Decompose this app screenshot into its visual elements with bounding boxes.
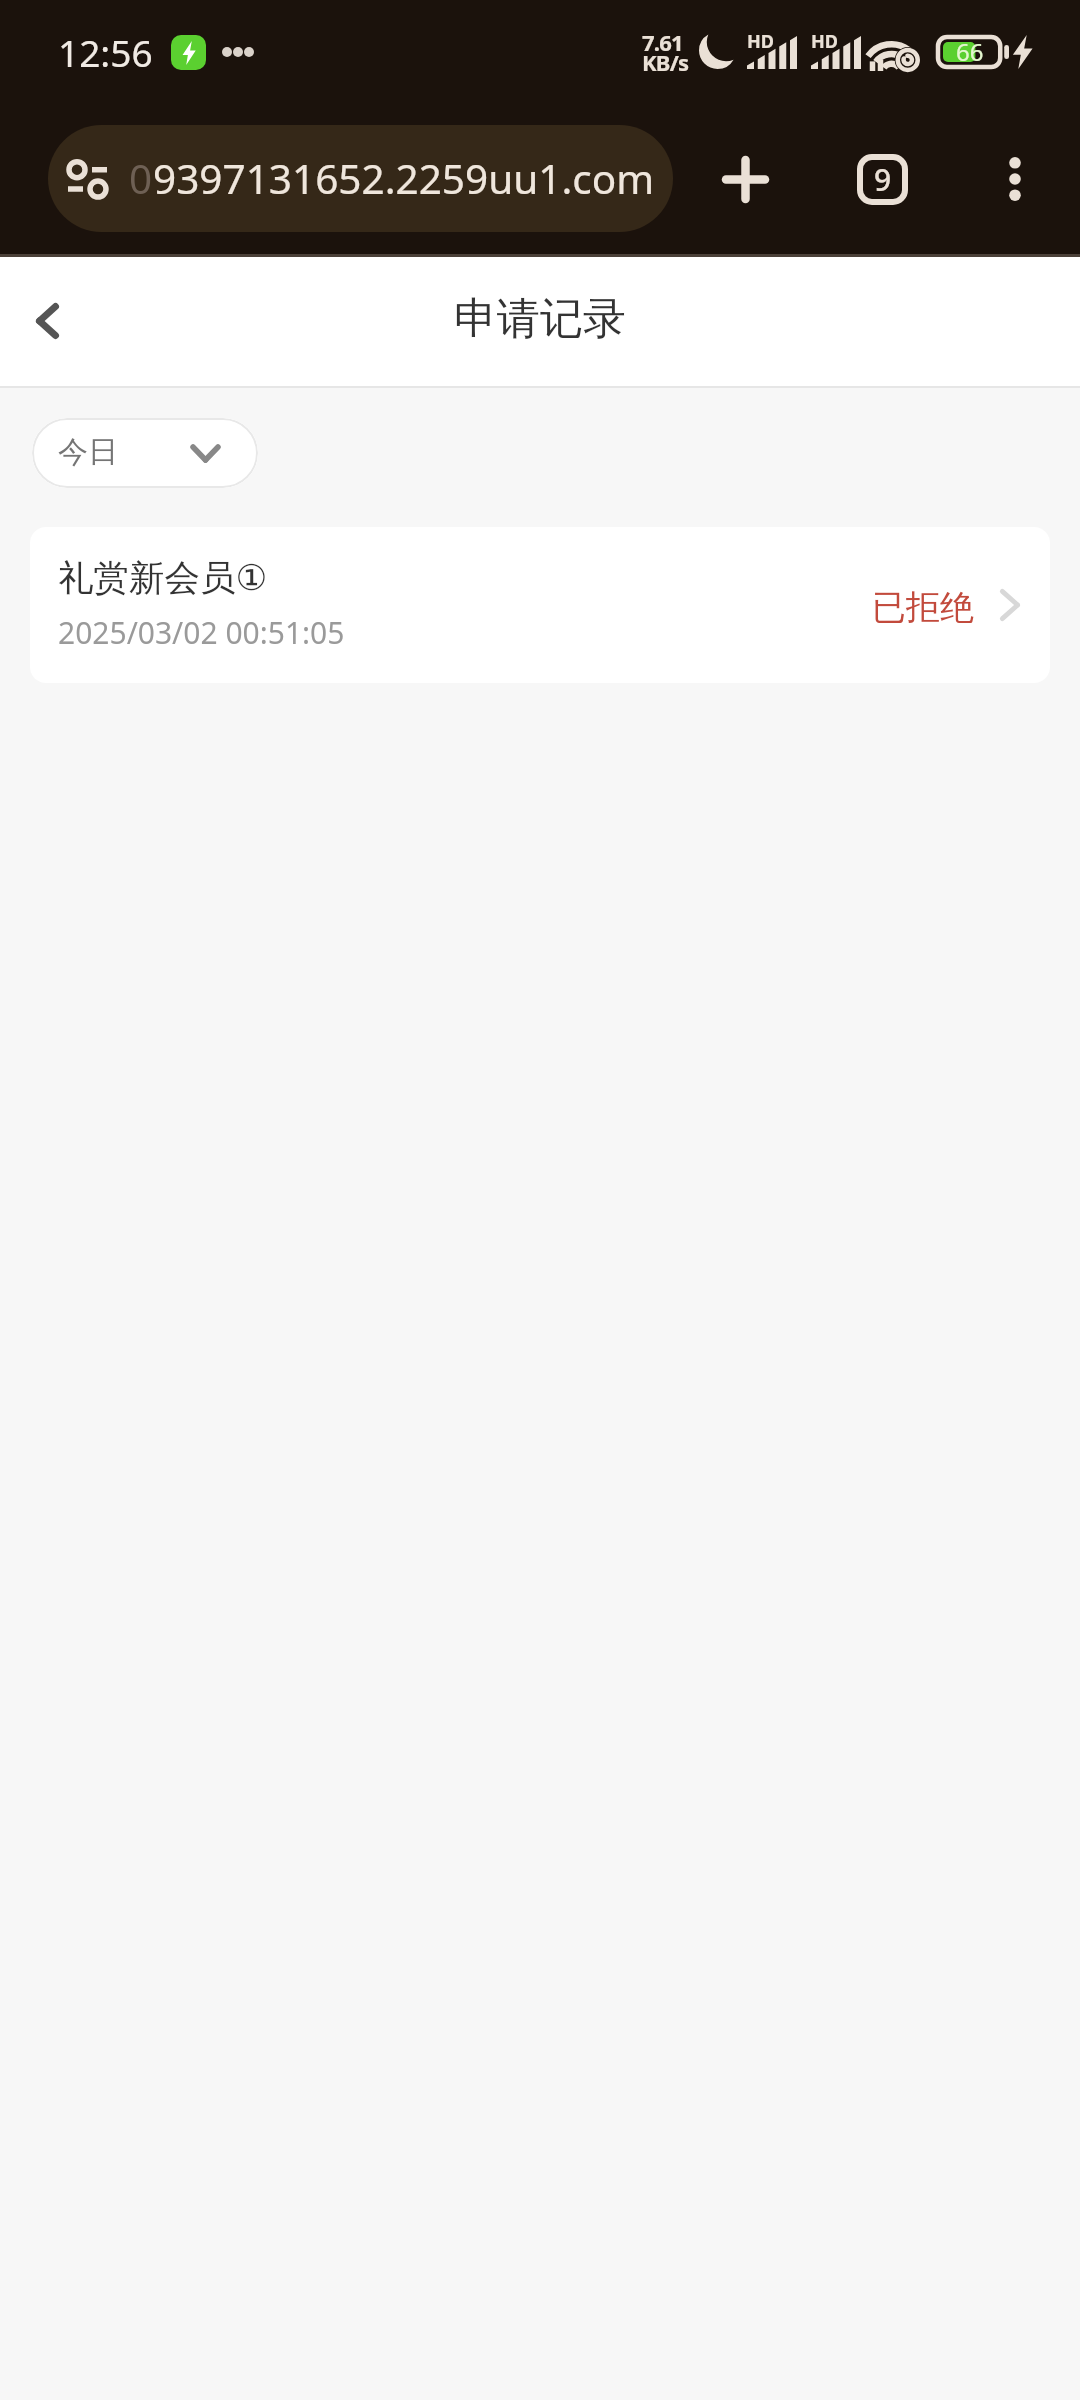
staticText: 申请记录 [454,292,626,346]
staticText: 2025/03/02 00:51:05 [58,612,345,653]
staticText: 7.61 KB/s [642,27,689,77]
staticText: 0 [129,151,153,206]
staticText: 今日 [58,433,118,471]
staticText: HD [747,29,774,54]
button[interactable]: Back [0,272,96,368]
staticText: HD [811,29,838,54]
staticText: 礼赏新会员① [58,556,268,601]
staticText: 9 [874,159,892,200]
button[interactable]: New tab [697,131,793,227]
staticText: 66 [956,35,984,67]
button[interactable]: 0 [48,125,673,232]
button[interactable]: 礼赏新会员① [30,527,1050,683]
staticText: 12:56 [58,27,153,77]
button[interactable]: 今日 [32,418,258,488]
staticText: 9397131652.2259uu1.com [153,151,655,206]
button[interactable]: More options [971,135,1059,223]
button[interactable]: Tabs [834,131,930,227]
staticText: 已拒绝 [872,586,974,629]
